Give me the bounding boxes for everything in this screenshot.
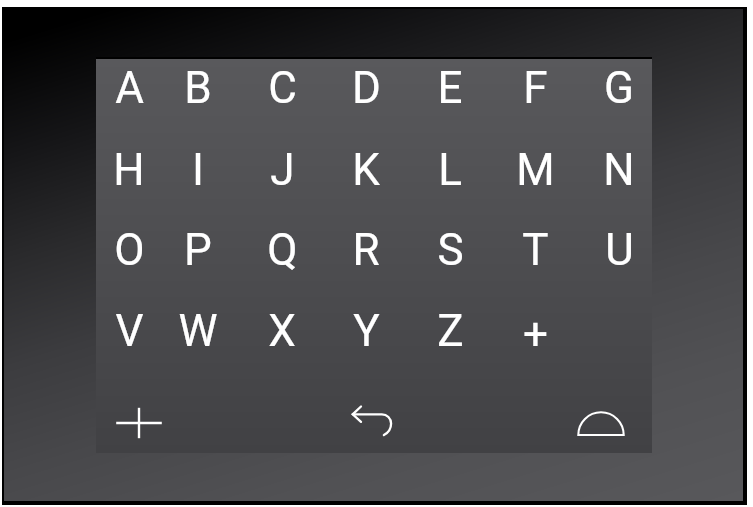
staticText: +	[523, 308, 548, 360]
button[interactable]: L	[413, 133, 487, 207]
staticText: W	[178, 305, 218, 357]
staticText: N	[603, 144, 635, 196]
staticText: B	[184, 62, 212, 114]
staticText: L	[438, 144, 462, 196]
button[interactable]: X	[245, 294, 319, 368]
button[interactable]: Q	[245, 213, 319, 287]
staticText: Y	[353, 305, 380, 357]
staticText: P	[184, 224, 212, 276]
staticText: S	[437, 224, 464, 276]
staticText: J	[270, 144, 295, 196]
button[interactable]: T	[498, 213, 572, 287]
button[interactable]: J	[245, 133, 319, 207]
staticText: E	[437, 62, 463, 114]
button[interactable]: B	[161, 51, 235, 125]
button[interactable]: U	[582, 213, 656, 287]
staticText: F	[523, 62, 548, 114]
button[interactable]: Z	[413, 294, 487, 368]
staticText: D	[352, 62, 381, 114]
button[interactable]: A	[92, 51, 166, 125]
staticText: I	[192, 144, 204, 196]
staticText: V	[115, 305, 144, 357]
button[interactable]: V	[92, 294, 166, 368]
button[interactable]: S	[413, 213, 487, 287]
button[interactable]: K	[329, 133, 403, 207]
button[interactable]: W	[161, 294, 235, 368]
button[interactable]: New	[107, 391, 171, 455]
button[interactable]: Home	[569, 391, 633, 455]
staticText: M	[516, 144, 555, 196]
button[interactable]: M	[498, 133, 572, 207]
staticText: Q	[267, 224, 298, 276]
button[interactable]: I	[161, 133, 235, 207]
button[interactable]: +	[498, 297, 572, 371]
staticText: K	[352, 144, 380, 196]
staticText: R	[352, 224, 380, 276]
button[interactable]: Y	[329, 294, 403, 368]
button[interactable]: R	[329, 213, 403, 287]
button[interactable]: N	[582, 133, 656, 207]
staticText: C	[268, 62, 297, 114]
staticText: A	[115, 62, 144, 114]
button[interactable]: C	[245, 51, 319, 125]
staticText: U	[605, 224, 634, 276]
button[interactable]: F	[498, 51, 572, 125]
staticText: O	[114, 224, 145, 276]
staticText: H	[113, 144, 145, 196]
staticText: Z	[437, 305, 464, 357]
staticText: X	[268, 305, 296, 357]
button[interactable]: O	[92, 213, 166, 287]
button[interactable]: D	[329, 51, 403, 125]
button[interactable]: P	[161, 213, 235, 287]
button[interactable]: E	[413, 51, 487, 125]
button[interactable]: G	[582, 51, 656, 125]
staticText: G	[604, 62, 634, 114]
staticText: T	[522, 224, 549, 276]
button[interactable]: H	[92, 133, 166, 207]
button[interactable]: Back	[340, 389, 404, 453]
